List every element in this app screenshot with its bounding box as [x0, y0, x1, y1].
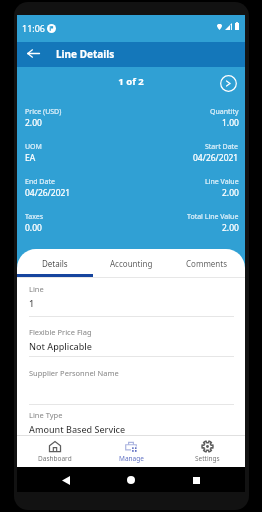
staticText: Supplier Personnel Name [29, 368, 119, 378]
button[interactable]: Home [122, 471, 140, 489]
staticText: Comments [186, 258, 228, 269]
staticText: Accounting [110, 258, 153, 269]
button[interactable]: Supplier Personnel Name [17, 356, 245, 404]
staticText: Line Details [56, 47, 115, 61]
button[interactable]: Recent apps [187, 471, 205, 489]
button[interactable]: Line Type [17, 404, 245, 436]
staticText: Start Date [205, 142, 239, 152]
staticText: End Date [25, 177, 55, 187]
button[interactable]: Accounting [93, 249, 169, 277]
staticText: 0.00 [25, 222, 42, 234]
staticText: Details [42, 258, 68, 269]
staticText: 1 [29, 297, 35, 309]
staticText: UOM [25, 142, 42, 152]
button[interactable]: Flexible Price Flag [17, 316, 245, 356]
staticText: Line [29, 284, 44, 294]
staticText: Taxes [25, 212, 44, 222]
staticText: 04/26/2021 [25, 187, 71, 199]
staticText: Line Type [29, 410, 63, 420]
staticText: Not Applicable [29, 340, 92, 352]
button[interactable]: Comments [169, 249, 245, 277]
staticText: 2.00 [222, 187, 239, 199]
staticText: 11:06 [22, 22, 46, 34]
button[interactable]: Line [17, 278, 245, 316]
staticText: 1.00 [222, 117, 239, 129]
staticText: 2.00 [222, 222, 239, 234]
button[interactable]: Dashboard [17, 436, 93, 467]
staticText: Dashboard [38, 454, 72, 463]
button[interactable]: Back [57, 471, 75, 489]
staticText: Line Value [205, 177, 239, 187]
button[interactable]: Details [17, 249, 93, 277]
staticText: Flexible Price Flag [29, 327, 92, 337]
staticText: Settings [195, 454, 220, 463]
staticText: 2.00 [25, 117, 42, 129]
button[interactable]: Manage [93, 436, 169, 467]
button[interactable]: Settings [169, 436, 245, 467]
staticText: 1 of 2 [17, 75, 245, 88]
staticText: Total Line Value [187, 212, 239, 222]
staticText: Price (USD) [25, 107, 62, 117]
staticText: Quantity [210, 107, 239, 117]
staticText: EA [25, 152, 36, 164]
button[interactable]: Next line [219, 74, 237, 92]
button[interactable]: Back [24, 44, 42, 62]
staticText: 04/26/2021 [193, 152, 239, 164]
staticText: Amount Based Service [29, 423, 126, 435]
staticText: Manage [119, 454, 144, 463]
